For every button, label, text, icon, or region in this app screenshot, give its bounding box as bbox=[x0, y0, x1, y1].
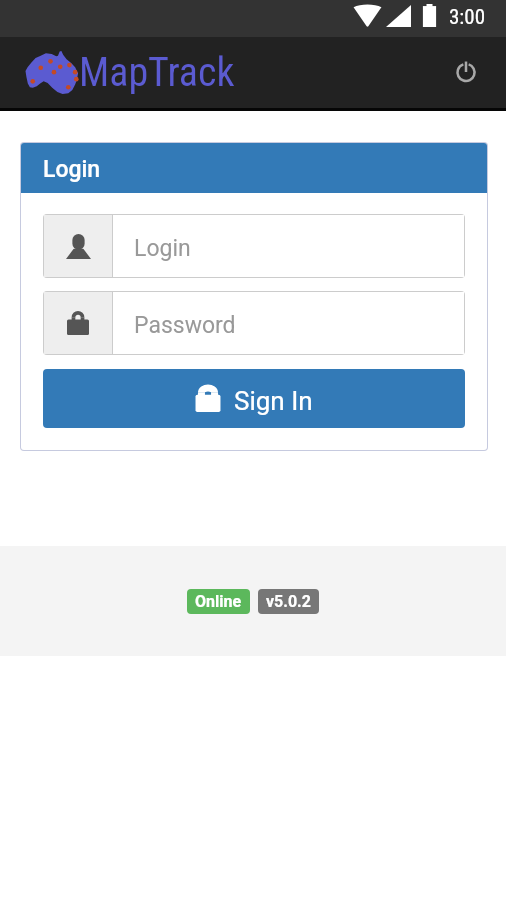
staticText: MapTrack bbox=[79, 49, 235, 96]
staticText: Login bbox=[43, 156, 101, 183]
button[interactable]: v5.0.2 bbox=[258, 589, 319, 614]
button[interactable]: Password bbox=[44, 292, 464, 354]
button[interactable]: Power / Log out bbox=[444, 49, 488, 93]
button[interactable]: Online bbox=[187, 589, 250, 614]
staticText: 3:00 bbox=[449, 5, 486, 30]
staticText: Sign In bbox=[234, 386, 313, 416]
button[interactable]: Sign In bbox=[43, 369, 465, 428]
staticText: Login bbox=[134, 235, 191, 262]
staticText: Password bbox=[134, 312, 236, 339]
staticText: v5.0.2 bbox=[266, 592, 311, 611]
button[interactable]: Login bbox=[44, 215, 464, 277]
staticText: Online bbox=[195, 592, 242, 611]
